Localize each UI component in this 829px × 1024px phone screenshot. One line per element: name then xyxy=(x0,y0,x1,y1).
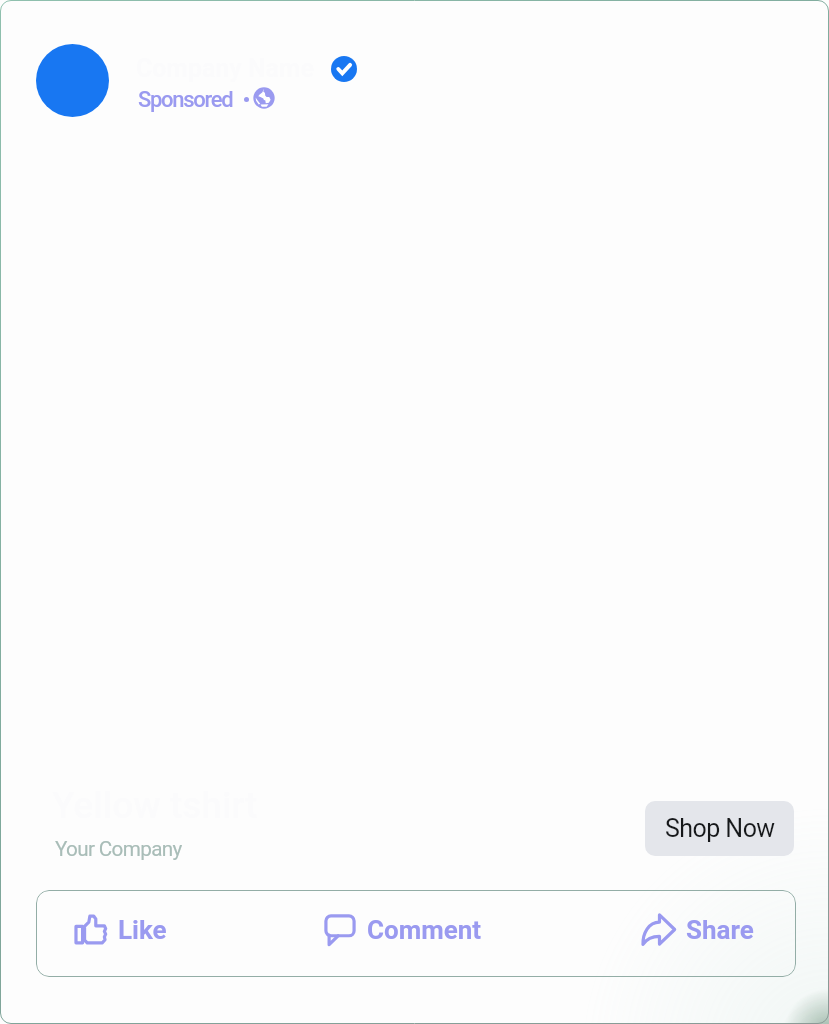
staticText: Comment xyxy=(367,915,482,945)
button[interactable]: Verified badge xyxy=(331,56,357,82)
staticText: Shop Now xyxy=(665,814,775,843)
staticText: Share xyxy=(686,915,754,945)
button[interactable]: Comment xyxy=(285,886,520,973)
staticText: Your Company xyxy=(55,837,182,861)
staticText: Sponsored xyxy=(138,87,233,113)
button[interactable]: Like xyxy=(34,886,206,973)
staticText: Like xyxy=(118,915,167,945)
button[interactable]: Share xyxy=(606,886,790,973)
button[interactable]: Shop Now xyxy=(645,801,794,856)
button[interactable]: Profile picture xyxy=(36,44,109,117)
